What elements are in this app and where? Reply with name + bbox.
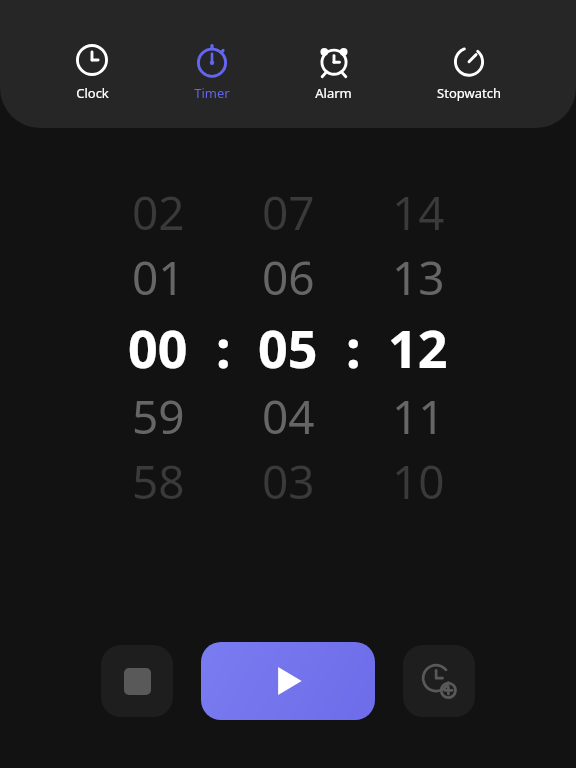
- staticText: :: [346, 312, 361, 383]
- button[interactable]: 01: [106, 245, 470, 310]
- button[interactable]: 58: [106, 449, 470, 514]
- button[interactable]: Add time: [403, 645, 475, 717]
- button[interactable]: Timer: [184, 39, 240, 106]
- staticText: 07: [262, 181, 315, 244]
- staticText: 02: [132, 181, 185, 244]
- staticText: 10: [392, 450, 445, 513]
- staticText: 04: [262, 385, 315, 448]
- button[interactable]: Stopwatch: [427, 39, 511, 106]
- button[interactable]: Stop: [101, 645, 173, 717]
- staticText: 11: [392, 385, 445, 448]
- staticText: Alarm: [315, 84, 352, 102]
- button[interactable]: 00: [106, 310, 470, 384]
- staticText: Clock: [76, 84, 109, 102]
- button[interactable]: 02: [106, 180, 470, 245]
- staticText: 06: [262, 246, 315, 309]
- staticText: 59: [132, 385, 185, 448]
- button[interactable]: Clock: [65, 39, 119, 106]
- button[interactable]: Alarm: [305, 39, 362, 106]
- staticText: Stopwatch: [437, 84, 501, 102]
- staticText: 58: [132, 450, 185, 513]
- button[interactable]: 59: [106, 384, 470, 449]
- staticText: 01: [132, 246, 185, 309]
- staticText: 14: [392, 181, 445, 244]
- staticText: :: [216, 312, 231, 383]
- staticText: 05: [258, 312, 318, 383]
- staticText: 03: [262, 450, 315, 513]
- staticText: 12: [388, 312, 448, 383]
- staticText: 13: [392, 246, 445, 309]
- staticText: Timer: [194, 84, 230, 102]
- button[interactable]: Start timer: [201, 642, 375, 720]
- staticText: 00: [128, 312, 188, 383]
